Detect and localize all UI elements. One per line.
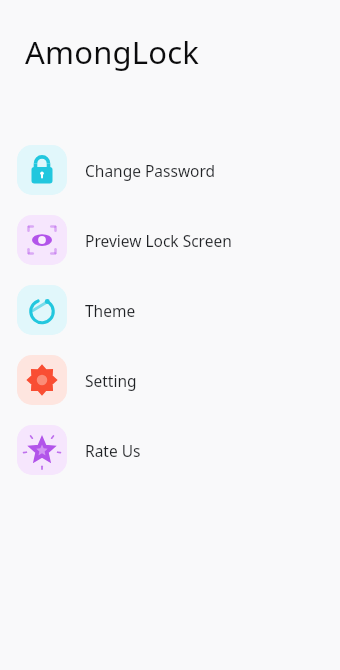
button[interactable]: Rate Us	[0, 425, 340, 475]
staticText: AmongLock	[25, 31, 200, 73]
button[interactable]: Theme	[0, 285, 340, 335]
staticText: Preview Lock Screen	[85, 230, 232, 251]
staticText: Rate Us	[85, 440, 141, 461]
button[interactable]: Change Password	[0, 145, 340, 195]
button[interactable]: Setting	[0, 355, 340, 405]
staticText: Setting	[85, 370, 137, 391]
staticText: Change Password	[85, 160, 216, 181]
button[interactable]: Preview Lock Screen	[0, 215, 340, 265]
staticText: Theme	[85, 300, 136, 321]
